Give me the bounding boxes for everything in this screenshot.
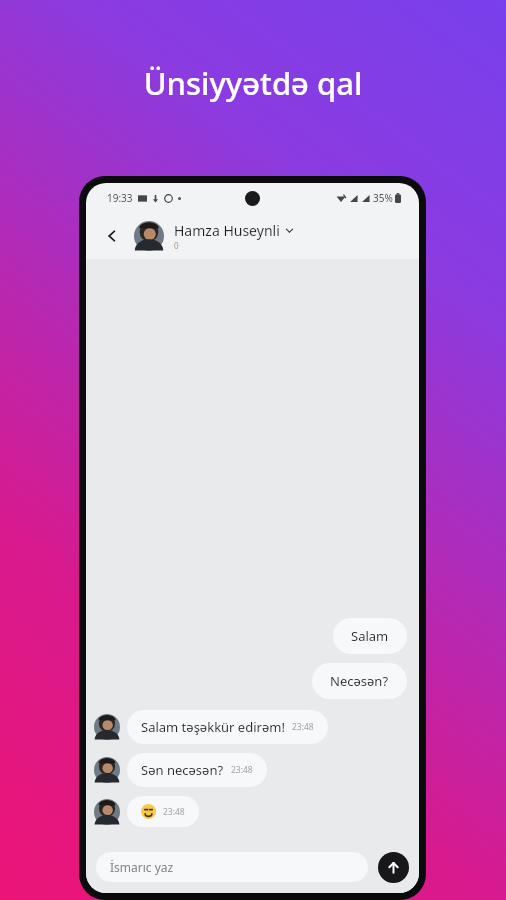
button[interactable]: İsmarıc yaz <box>96 852 368 882</box>
button[interactable]: Salam təşəkkür edirəm! <box>127 710 328 744</box>
staticText: Salam təşəkkür edirəm! <box>141 718 285 736</box>
staticText: Salam <box>351 627 389 645</box>
staticText: 35% <box>373 191 393 205</box>
button[interactable]: Send <box>378 852 409 883</box>
staticText: 23:48 <box>231 764 253 776</box>
staticText: İsmarıc yaz <box>110 859 174 875</box>
button[interactable]: Necəsən? <box>312 663 407 699</box>
staticText: 19:33 <box>107 191 133 205</box>
staticText: Sən necəsən? <box>141 761 224 779</box>
staticText: 23:48 <box>292 721 314 733</box>
button[interactable]: Sən necəsən? <box>127 753 267 787</box>
staticText: Hamza Huseynli <box>174 221 280 240</box>
button[interactable]: Salam <box>333 618 407 654</box>
staticText: 0 <box>174 240 179 251</box>
staticText: 23:48 <box>163 806 185 818</box>
staticText: Ünsiyyətdə qal <box>0 62 506 104</box>
staticText: Necəsən? <box>330 672 389 690</box>
button[interactable]: Back <box>98 222 126 250</box>
button[interactable]: 23:48 <box>127 796 199 827</box>
button[interactable]: Hamza Huseynli <box>134 221 294 251</box>
